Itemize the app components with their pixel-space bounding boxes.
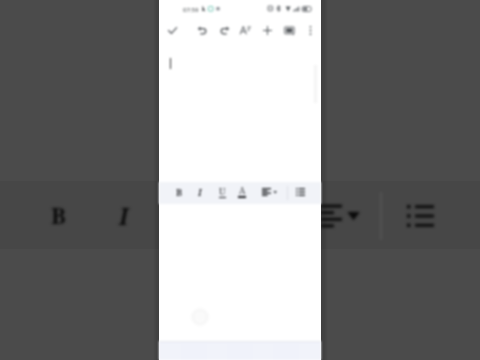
staticText: I (198, 186, 202, 198)
staticText: 07:59 (183, 6, 199, 14)
staticText: A (239, 184, 246, 196)
button[interactable]: Undo (191, 19, 213, 41)
button[interactable]: List options (290, 182, 310, 202)
button[interactable]: Insert image (278, 19, 300, 41)
button[interactable]: Italic (190, 182, 210, 202)
button[interactable]: Text colour (232, 182, 252, 202)
button[interactable]: Paragraph alignment (260, 182, 280, 202)
button[interactable]: Done (161, 19, 183, 41)
staticText: U (219, 185, 226, 197)
staticText: B (176, 186, 183, 198)
button[interactable]: Formatting options (234, 19, 256, 41)
button[interactable]: Underline (212, 182, 232, 202)
button[interactable]: Add (256, 19, 278, 41)
button[interactable]: Bold (169, 182, 189, 202)
button[interactable]: More options (299, 19, 321, 41)
staticText: B (51, 200, 66, 230)
staticText: I (119, 200, 129, 231)
button[interactable]: Redo (213, 19, 235, 41)
